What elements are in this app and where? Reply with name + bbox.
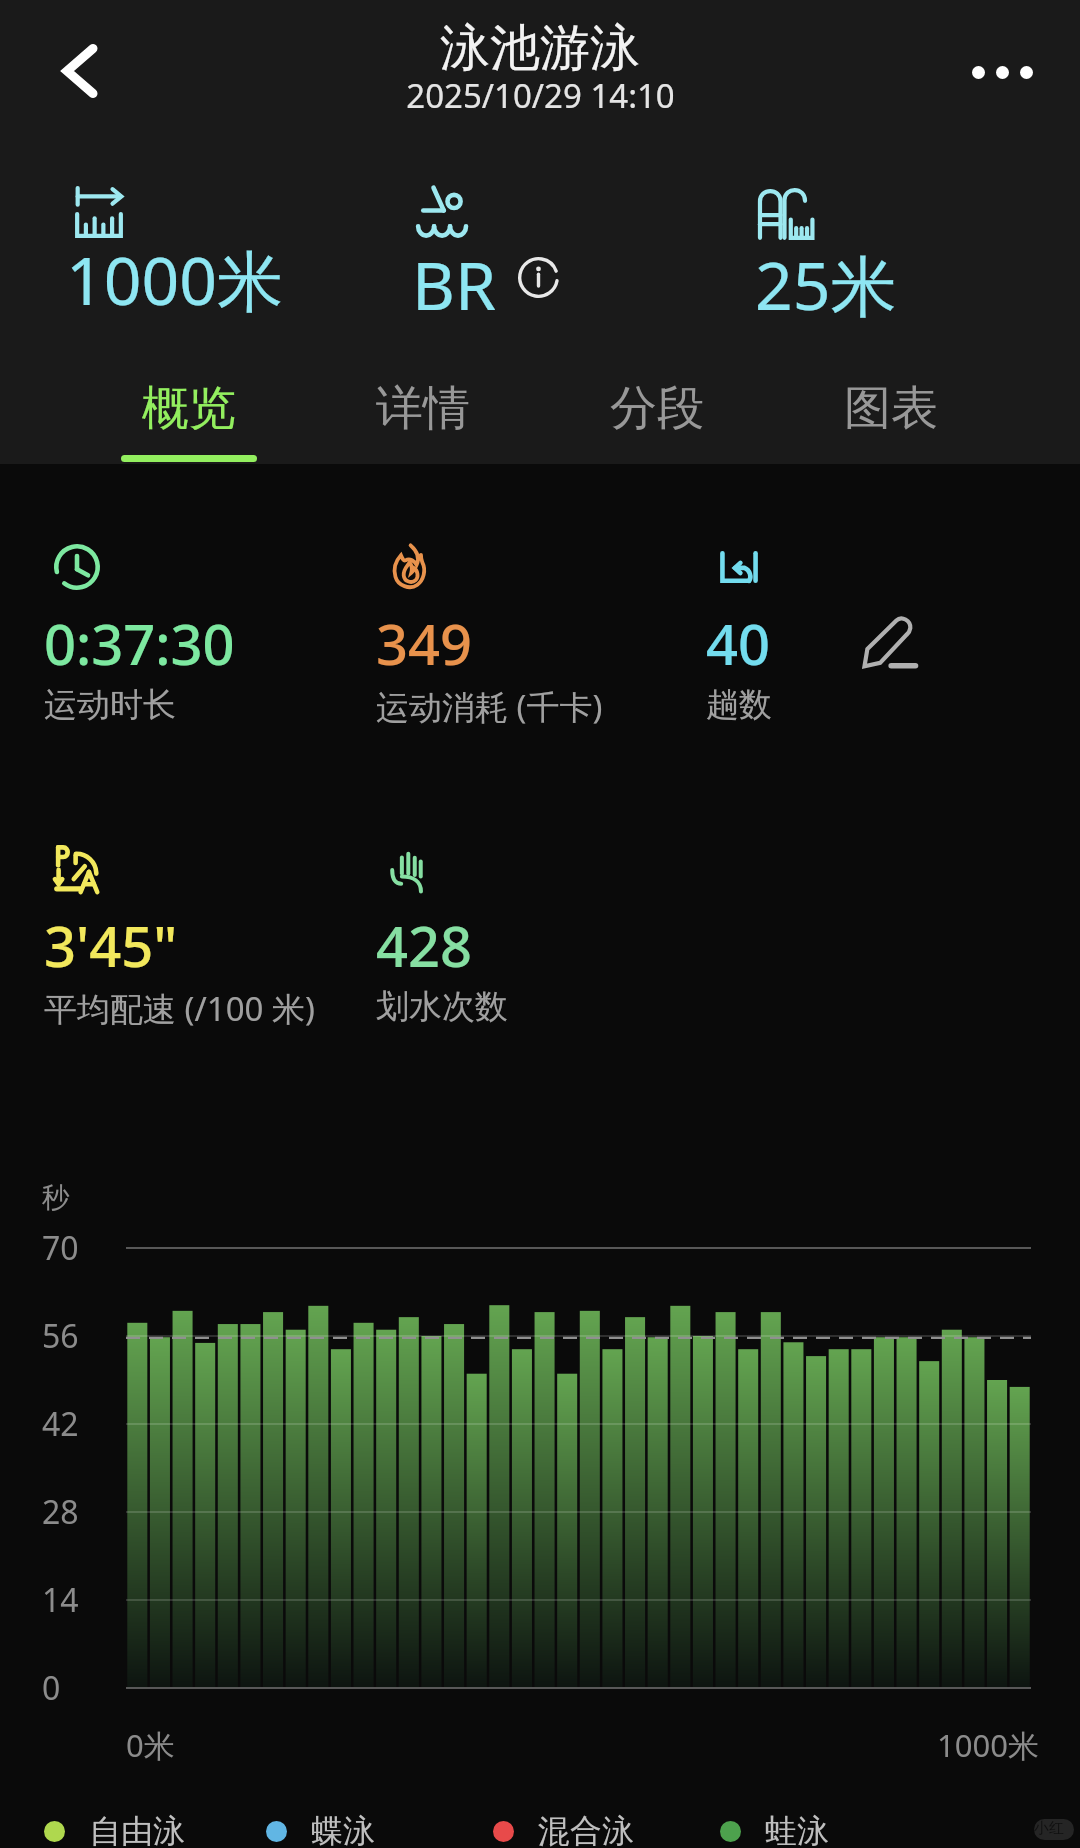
button[interactable]: 0:37:30 [46,528,356,728]
staticText: 详情 [376,379,470,438]
staticText: BR [412,239,496,329]
button[interactable]: 混合泳 [493,1810,634,1848]
button[interactable]: 349 [378,528,688,728]
staticText: 运动消耗 (千卡) [376,684,603,729]
button[interactable]: 1000米 [66,186,284,328]
staticText: 25米 [755,239,897,329]
button[interactable]: 自由泳 [44,1810,185,1848]
staticText: 0 [42,1666,61,1710]
staticText: 428 [376,907,473,983]
staticText: 1000米 [66,234,284,324]
staticText: 1000米 [937,1724,1039,1766]
staticText: 2025/10/29 14:10 [406,73,675,118]
staticText: 14 [42,1578,79,1622]
staticText: 0米 [126,1724,175,1766]
staticText: 图表 [844,379,938,438]
button[interactable]: More options [957,27,1047,117]
button[interactable]: 25米 [755,186,897,333]
staticText: 56 [42,1314,79,1358]
staticText: 平均配速 (/100 米) [44,986,315,1031]
button[interactable]: 概览 [72,359,306,464]
button[interactable]: 40 [708,528,1018,728]
staticText: 349 [376,605,473,681]
button[interactable]: 图表 [774,359,1008,464]
staticText: 40 [706,605,771,681]
staticText: 0:37:30 [44,605,235,681]
staticText: 秒 [42,1180,70,1215]
staticText: 混合泳 [538,1811,634,1848]
button[interactable]: 蛙泳 [720,1810,829,1848]
staticText: 趟数 [706,684,772,726]
button[interactable]: Back [35,26,125,116]
button[interactable]: 428 [378,830,688,1030]
staticText: 概览 [142,379,236,438]
staticText: 运动时长 [44,684,176,726]
staticText: 70 [42,1226,79,1270]
staticText: 42 [42,1402,79,1446]
staticText: 蛙泳 [765,1811,829,1848]
staticText: 泳池游泳 [440,17,640,80]
staticText: 分段 [610,379,704,438]
button[interactable]: 详情 [306,359,540,464]
staticText: 小红书 [1034,1819,1074,1840]
button[interactable]: Info [518,264,559,305]
staticText: 自由泳 [89,1811,185,1848]
staticText: 28 [42,1490,79,1534]
staticText: 划水次数 [376,986,508,1028]
button[interactable]: 3'45" [46,830,356,1030]
staticText: 蝶泳 [311,1811,375,1848]
button[interactable]: 蝶泳 [266,1810,375,1848]
button[interactable]: Edit [840,592,940,692]
staticText: 3'45" [44,907,178,983]
button[interactable]: BR [412,186,559,333]
button[interactable]: 分段 [540,359,774,464]
